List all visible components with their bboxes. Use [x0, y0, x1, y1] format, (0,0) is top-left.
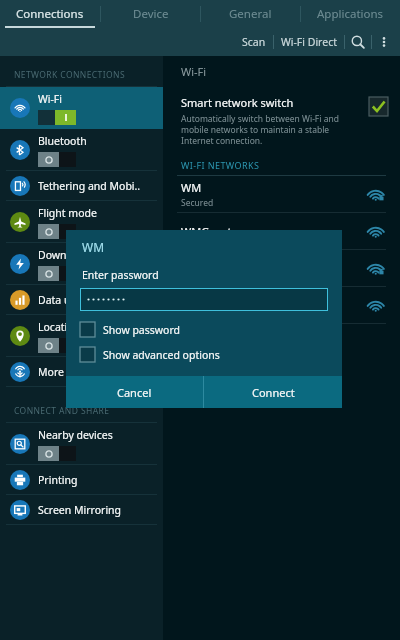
staticText: CONNECT AND SHARE: [14, 405, 110, 417]
button[interactable]: Nearby devices: [0, 423, 163, 465]
staticText: Secured: [181, 197, 214, 209]
button[interactable]: Show password: [66, 322, 342, 337]
button[interactable]: Connections: [0, 0, 100, 28]
staticText: Device: [133, 6, 169, 22]
staticText: Applications: [317, 6, 384, 22]
staticText: WM: [181, 180, 202, 195]
staticText: Connections: [16, 6, 84, 22]
staticText: Tethering and Mobi..: [38, 179, 141, 193]
staticText: Show advanced options: [103, 348, 220, 362]
staticText: Bluetooth: [38, 134, 87, 148]
staticText: NETWORK CONNECTIONS: [14, 69, 125, 81]
staticText: General: [229, 6, 272, 22]
staticText: Show password: [103, 323, 180, 337]
button[interactable]: Connect: [204, 376, 342, 408]
staticText: Scan: [242, 35, 266, 49]
staticText: Enter password: [82, 268, 159, 282]
button[interactable]: WMGuest: [163, 213, 400, 250]
staticText: WI-FI NETWORKS: [181, 159, 260, 171]
staticText: More networks: [38, 365, 113, 379]
staticText: Connect: [252, 385, 295, 400]
staticText: Smart network switch: [181, 95, 294, 110]
button[interactable]: Printing: [0, 465, 163, 495]
button[interactable]: Location: [0, 315, 163, 357]
button[interactable]: WM: [163, 176, 400, 213]
staticText: Location: [38, 320, 81, 334]
staticText: WM: [82, 239, 105, 255]
button[interactable]: [163, 250, 400, 287]
button[interactable]: Cancel: [66, 376, 203, 408]
button[interactable]: General: [201, 0, 300, 28]
button[interactable]: Search: [345, 29, 371, 55]
staticText: Wi-Fi: [181, 64, 207, 79]
staticText: WMGuest: [181, 224, 232, 239]
staticText: Nearby devices: [38, 428, 113, 442]
button[interactable]: Tethering and Mobi..: [0, 171, 163, 201]
staticText: Screen Mirroring: [38, 503, 122, 517]
button[interactable]: Applications: [301, 0, 400, 28]
staticText: Download booster: [38, 248, 129, 262]
staticText: Flight mode: [38, 206, 97, 220]
button[interactable]: More networks: [0, 357, 163, 387]
button[interactable]: More options: [372, 30, 396, 54]
button[interactable]: Smart network switch: [163, 95, 400, 146]
button[interactable]: Flight mode: [0, 201, 163, 243]
button[interactable]: Wi-Fi Direct: [274, 30, 344, 54]
staticText: Wi-Fi Direct: [281, 35, 337, 49]
staticText: Cancel: [117, 385, 152, 400]
staticText: Wi-Fi: [38, 92, 63, 106]
button[interactable]: Bluetooth: [0, 129, 163, 171]
button[interactable]: Screen Mirroring: [0, 495, 163, 525]
button[interactable]: [80, 288, 328, 311]
staticText: Printing: [38, 473, 78, 487]
staticText: Automatically switch between Wi-Fi and m…: [181, 113, 363, 146]
button[interactable]: Scan: [235, 30, 273, 54]
button[interactable]: Download booster: [0, 243, 163, 285]
staticText: Data usage: [38, 293, 94, 307]
button[interactable]: Device: [101, 0, 200, 28]
button[interactable]: Data usage: [0, 285, 163, 315]
button[interactable]: Show advanced options: [66, 347, 342, 362]
button[interactable]: Wi-Fi: [0, 87, 163, 129]
button[interactable]: [163, 287, 400, 324]
